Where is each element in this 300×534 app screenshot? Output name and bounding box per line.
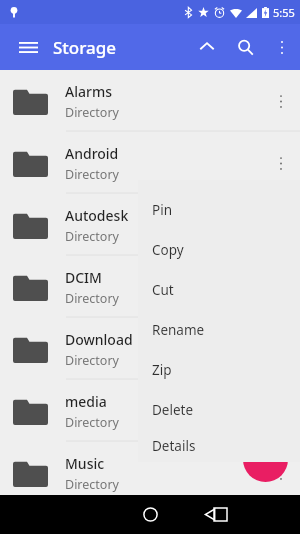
button[interactable]: Alarms bbox=[0, 70, 300, 132]
staticText: Directory bbox=[65, 104, 119, 121]
button[interactable]: DCIM bbox=[0, 256, 300, 318]
staticText: Directory bbox=[65, 414, 119, 431]
button[interactable]: Music bbox=[0, 442, 300, 504]
button[interactable]: Cut bbox=[138, 270, 300, 310]
staticText: Directory bbox=[65, 476, 119, 493]
staticText: Directory bbox=[65, 166, 119, 183]
staticText: media bbox=[65, 392, 107, 411]
button[interactable]: Zip bbox=[138, 350, 300, 390]
button[interactable]: Back bbox=[60, 495, 300, 534]
button[interactable]: Navigation menu bbox=[8, 27, 48, 67]
staticText: Directory bbox=[65, 290, 119, 307]
staticText: Zip bbox=[152, 361, 172, 379]
button[interactable]: Pin bbox=[138, 190, 300, 230]
staticText: Rename bbox=[152, 321, 205, 339]
button[interactable]: Item options for Alarms bbox=[262, 82, 300, 120]
staticText: Copy bbox=[152, 241, 184, 259]
button[interactable]: More options bbox=[264, 29, 300, 65]
button[interactable]: Rename bbox=[138, 310, 300, 350]
staticText: DCIM bbox=[65, 268, 102, 287]
staticText: Details bbox=[152, 437, 196, 455]
staticText: Autodesk bbox=[65, 206, 129, 225]
staticText: Download bbox=[65, 330, 133, 349]
button[interactable]: Home bbox=[130, 495, 170, 534]
button[interactable]: Collapse bbox=[188, 28, 226, 66]
staticText: 5:55 bbox=[273, 5, 295, 20]
button[interactable]: Copy bbox=[138, 230, 300, 270]
staticText: Android bbox=[65, 144, 119, 163]
staticText: Storage bbox=[53, 36, 117, 59]
staticText: Cut bbox=[152, 281, 174, 299]
button[interactable]: Item options for Android bbox=[262, 144, 300, 182]
button[interactable]: Autodesk bbox=[0, 194, 300, 256]
staticText: Music bbox=[65, 454, 105, 473]
button[interactable]: Download bbox=[0, 318, 300, 380]
staticText: Directory bbox=[65, 352, 119, 369]
button[interactable]: Details bbox=[138, 430, 300, 462]
button[interactable]: media bbox=[0, 380, 300, 442]
staticText: Alarms bbox=[65, 82, 112, 101]
button[interactable]: Android bbox=[0, 132, 300, 194]
button[interactable]: Delete bbox=[138, 390, 300, 430]
staticText: Pin bbox=[152, 201, 172, 219]
button[interactable]: Add bbox=[243, 437, 288, 482]
button[interactable]: Item options for Music bbox=[262, 454, 300, 492]
button[interactable]: Recents bbox=[200, 495, 240, 534]
button[interactable]: Search bbox=[226, 28, 264, 66]
staticText: Directory bbox=[65, 228, 119, 245]
staticText: Delete bbox=[152, 401, 194, 419]
